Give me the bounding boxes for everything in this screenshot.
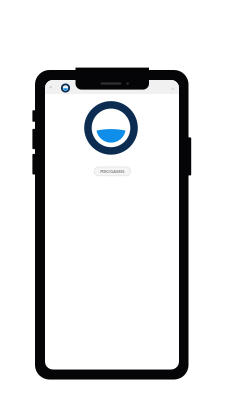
staticText: POKI GAMES: [100, 169, 124, 174]
button[interactable]: POKI GAMES: [94, 167, 130, 176]
